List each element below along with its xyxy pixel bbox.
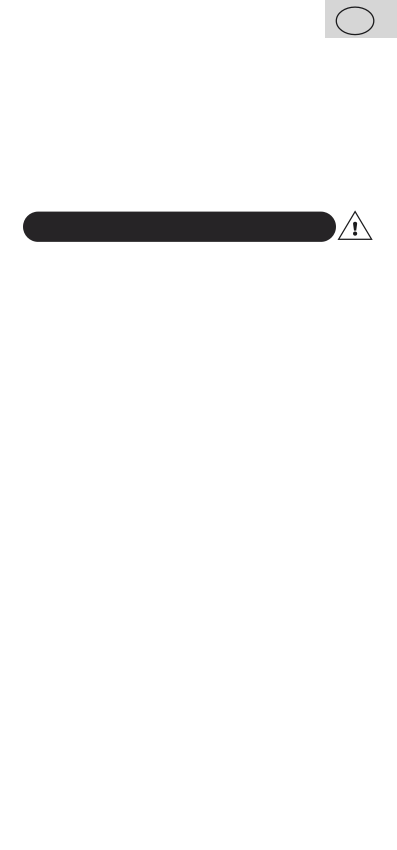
button[interactable]: Account — [325, 0, 397, 38]
button[interactable]: Message field — [23, 212, 336, 242]
button[interactable]: Warning — [339, 212, 372, 239]
